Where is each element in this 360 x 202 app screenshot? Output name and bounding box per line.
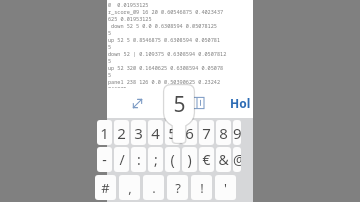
staticText: 625 0.01953125 [108,15,253,22]
button[interactable]: / [114,147,129,172]
staticText: down 52 5 0.0 0.6308594 0.05078125 [108,22,253,29]
staticText: 5 [163,90,174,116]
button[interactable]: 8 [216,120,231,145]
staticText: ; [154,150,158,169]
button[interactable]: 6 [182,120,197,145]
staticText: r_score_09 16 20 0.60546875 0.4023437 [108,8,253,15]
button[interactable]: 3 [131,120,146,145]
button[interactable]: # [95,175,116,200]
staticText: ) [187,150,192,169]
staticText: 8 [219,123,228,143]
button[interactable]: 4 [148,120,163,145]
button[interactable]: ) [182,147,197,172]
button[interactable]: - [97,147,112,172]
button[interactable]: Key 5 [164,85,194,143]
staticText: 5 [173,90,186,119]
staticText: 0 0.01953125 [108,1,253,8]
staticText: up 52 5 0.8546875 0.6308594 0.050781 [108,36,253,43]
staticText: down 52 | 0.109375 0.6308594 0.0507812 [108,50,253,57]
staticText: 5 [108,43,253,50]
staticText: 5 [108,57,253,64]
staticText: # [101,179,110,197]
staticText: 6 [185,123,194,143]
button[interactable]: ' [215,175,236,200]
staticText: . [152,179,156,197]
button[interactable]: Dictionary [186,92,208,114]
button[interactable]: 9 [233,120,241,145]
staticText: 4 [151,123,160,143]
staticText: : [137,150,141,169]
button[interactable]: ! [191,175,212,200]
button[interactable]: 2 [114,120,129,145]
button[interactable]: : [131,147,146,172]
staticText: 7 [202,123,211,143]
button[interactable]: Hol [228,95,253,111]
staticText: @ [233,150,241,169]
staticText: ( [170,150,175,169]
staticText: ? [175,179,181,197]
staticText: € [202,150,211,169]
staticText: , [128,179,132,197]
staticText: / [119,150,125,169]
staticText: up 52 320 0.1640625 0.6308594 0.05078 [108,64,253,71]
button[interactable]: ( [165,147,180,172]
button[interactable]: 5 [165,120,180,145]
button[interactable]: & [216,147,231,172]
button[interactable]: 7 [199,120,214,145]
staticText: 1 [100,123,109,143]
staticText: 9 [233,123,241,143]
staticText: panel 238 126 0.0 0.50390625 0.23242 [108,78,253,85]
staticText: 3 [134,123,143,143]
button[interactable]: Resize [125,91,149,115]
staticText: 5 [168,123,177,143]
button[interactable]: 1 [97,120,112,145]
staticText: - [102,150,107,169]
button[interactable]: € [199,147,214,172]
button[interactable]: @ [233,147,241,172]
staticText: & [218,150,229,169]
staticText: ! [200,179,204,197]
button[interactable]: . [143,175,164,200]
button[interactable]: ? [167,175,188,200]
button[interactable]: ; [148,147,163,172]
staticText: 5 [108,71,253,78]
button[interactable]: , [119,175,140,200]
staticText: ' [224,179,227,197]
staticText: 2 [117,123,126,143]
staticText: 046875 [108,85,253,88]
staticText: 5 [108,29,253,36]
staticText: Hol [230,95,251,111]
